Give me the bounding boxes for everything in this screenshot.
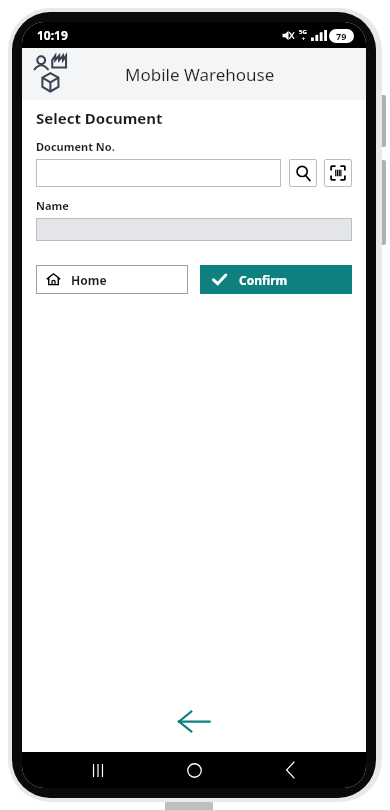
button[interactable]: Home xyxy=(174,752,214,788)
button[interactable]: Confirm xyxy=(200,265,352,294)
button[interactable]: Back xyxy=(171,701,217,741)
staticText: + xyxy=(302,36,305,43)
button[interactable]: Recents xyxy=(78,752,118,788)
staticText: Select Document xyxy=(36,108,163,128)
button[interactable]: Back xyxy=(270,752,310,788)
staticText: Confirm xyxy=(239,272,288,288)
button[interactable] xyxy=(36,159,281,187)
staticText: Name xyxy=(36,198,69,213)
staticText: 10:19 xyxy=(37,27,68,43)
staticText: Document No. xyxy=(36,139,115,154)
staticText: 5G xyxy=(299,28,307,36)
button[interactable]: Search xyxy=(289,159,317,187)
button[interactable]: Scan barcode xyxy=(324,159,352,187)
staticText: Mobile Warehouse xyxy=(125,63,275,86)
staticText: 79 xyxy=(336,30,347,42)
button[interactable]: Home xyxy=(36,265,188,294)
staticText: Home xyxy=(71,272,107,288)
